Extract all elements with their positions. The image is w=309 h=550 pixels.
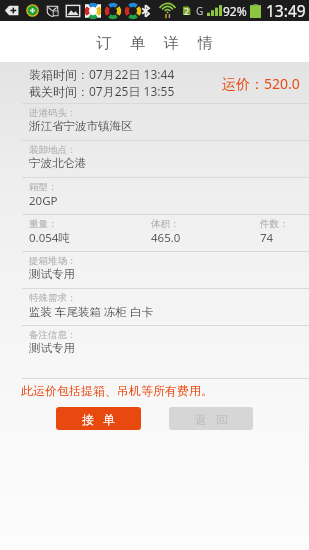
staticText: 宁波北仑港	[29, 156, 87, 170]
staticText: 装箱时间：07月22日 13:44	[29, 66, 175, 82]
staticText: 备注信息：	[29, 329, 77, 341]
staticText: 重量：	[29, 218, 58, 230]
staticText: 74	[260, 230, 274, 246]
staticText: 进港码头：	[29, 107, 77, 119]
button[interactable]: 接 单	[56, 407, 141, 430]
staticText: 13:49	[266, 0, 306, 21]
staticText: 测试专用	[29, 267, 75, 281]
staticText: 返 回	[195, 411, 232, 427]
staticText: 接 单	[82, 411, 119, 427]
staticText: 0.054吨	[29, 230, 70, 246]
staticText: 特殊需求：	[29, 292, 77, 304]
staticText: 箱型：	[29, 181, 58, 193]
button[interactable]: 返 回	[169, 407, 253, 430]
staticText: 此运价包括提箱、吊机等所有费用。	[21, 383, 213, 398]
staticText: 提箱堆场：	[29, 255, 77, 267]
staticText: 运价：520.0	[222, 74, 300, 93]
staticText: 截关时间：07月25日 13:55	[29, 83, 175, 99]
staticText: G	[196, 4, 204, 18]
staticText: 465.0	[151, 230, 181, 246]
staticText: 装卸地点：	[29, 144, 77, 156]
staticText: 体积：	[151, 218, 180, 230]
staticText: 浙江省宁波市镇海区	[29, 119, 133, 133]
staticText: 2	[184, 5, 190, 17]
staticText: 20GP	[29, 193, 58, 209]
staticText: 监装 车尾装箱 冻柜 白卡	[29, 304, 153, 320]
staticText: 测试专用	[29, 341, 75, 355]
staticText: 件数：	[260, 218, 289, 230]
staticText: 订 单 详 情	[96, 32, 221, 52]
staticText: 92%	[223, 3, 247, 19]
